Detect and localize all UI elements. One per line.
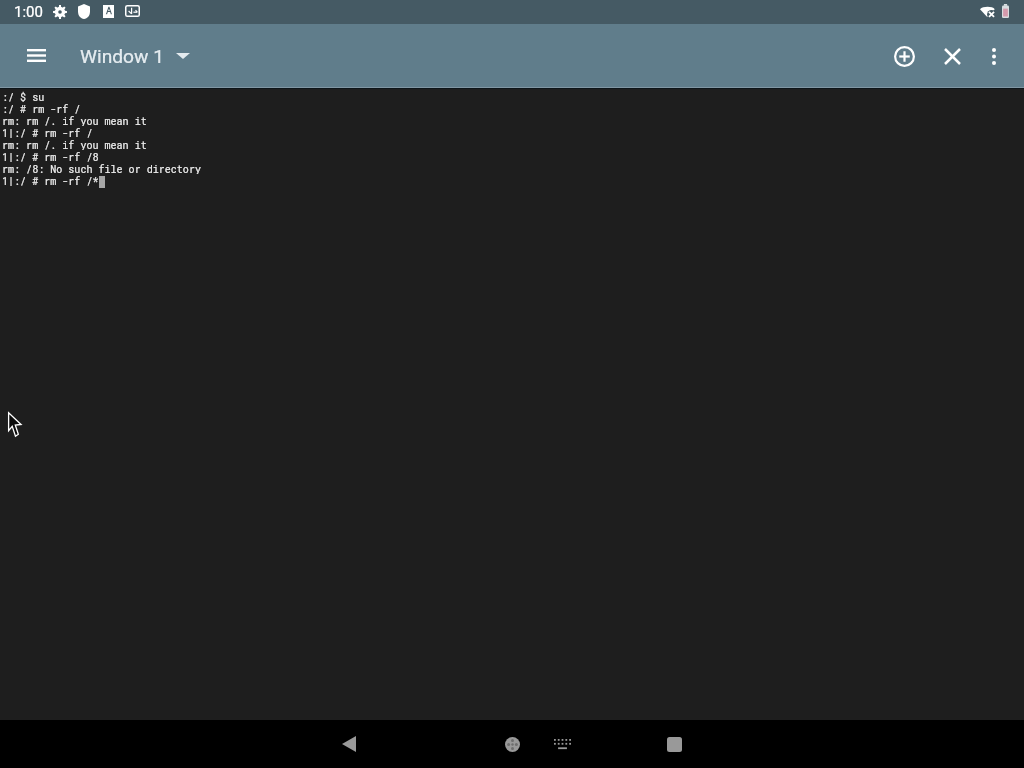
button[interactable]: Recent apps [650, 720, 698, 768]
button[interactable]: Select window [159, 33, 207, 81]
staticText: rm: rm /. if you mean it [2, 138, 147, 150]
staticText: :/ # rm -rf / [2, 102, 81, 114]
staticText: Window 1 [80, 45, 165, 68]
button[interactable]: Close window [928, 33, 976, 81]
staticText: A [106, 6, 112, 17]
staticText: 1:00 [14, 3, 43, 21]
staticText: 1|:/ # rm -rf / [2, 126, 93, 138]
staticText: rm: /8: No such file or directory [2, 162, 201, 174]
button[interactable]: New window [880, 33, 928, 81]
button[interactable]: Home [488, 720, 536, 768]
button[interactable]: More options [970, 33, 1018, 81]
button[interactable]: Open navigation drawer [12, 33, 60, 81]
staticText: rm: rm /. if you mean it [2, 114, 147, 126]
button[interactable]: Terminal output [0, 89, 1024, 720]
staticText: 1|:/ # rm -rf /8 [2, 150, 99, 162]
button[interactable]: Show keyboard [538, 720, 586, 768]
staticText: :/ $ su [2, 90, 45, 102]
staticText: 1|:/ # rm -rf /* [2, 174, 99, 186]
button[interactable]: Back [325, 720, 373, 768]
